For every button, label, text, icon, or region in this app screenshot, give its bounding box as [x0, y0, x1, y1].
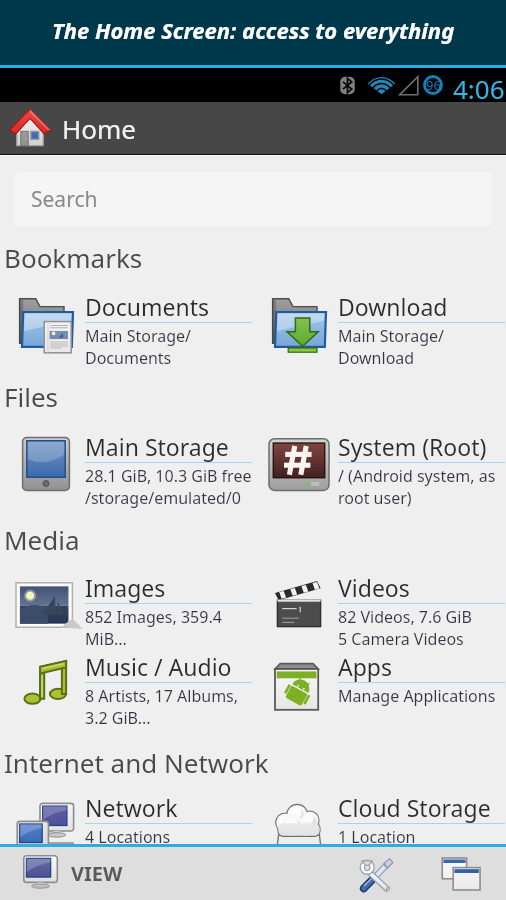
button[interactable]: Home: [0, 102, 506, 154]
staticText: Documents: [85, 347, 172, 369]
staticText: MiB...: [85, 628, 127, 650]
button[interactable]: Images: [0, 572, 253, 650]
staticText: Download: [338, 347, 415, 369]
staticText: VIEW: [71, 860, 123, 887]
button[interactable]: Music / Audio: [0, 651, 253, 729]
staticText: 8 Artists, 17 Albums,: [85, 685, 239, 707]
staticText: Search: [31, 185, 98, 214]
button[interactable]: Download: [253, 291, 506, 369]
button[interactable]: Documents: [0, 291, 253, 369]
staticText: Internet and Network: [4, 745, 269, 780]
staticText: root user): [338, 487, 412, 509]
staticText: 4 Locations: [85, 826, 171, 848]
button[interactable]: Network: [0, 792, 253, 852]
staticText: / (Android system, as: [338, 465, 496, 487]
staticText: 4:06: [453, 71, 505, 105]
button[interactable]: Tools: [354, 847, 398, 900]
staticText: 5 Camera Videos: [338, 628, 464, 650]
staticText: Music / Audio: [85, 651, 232, 682]
button[interactable]: Videos: [253, 572, 506, 650]
staticText: The Home Screen: access to everything: [52, 15, 455, 45]
staticText: Download: [338, 291, 448, 322]
staticText: 28.1 GiB, 10.3 GiB free: [85, 465, 252, 487]
staticText: 3.2 GiB...: [85, 707, 151, 729]
button[interactable]: Main Storage: [0, 431, 253, 509]
staticText: /storage/emulated/0: [85, 487, 241, 509]
staticText: Home: [62, 111, 136, 146]
staticText: Apps: [338, 651, 393, 682]
staticText: Files: [4, 379, 59, 414]
staticText: 1 Location: [338, 826, 416, 848]
staticText: Media: [4, 522, 80, 557]
button[interactable]: VIEW: [23, 847, 143, 900]
staticText: Documents: [85, 291, 209, 322]
staticText: System (Root): [338, 431, 487, 462]
button[interactable]: Windows: [438, 847, 486, 900]
staticText: Main Storage: [85, 431, 229, 462]
staticText: Bookmarks: [4, 240, 143, 275]
staticText: Main Storage/: [338, 325, 444, 347]
staticText: 96: [426, 76, 441, 94]
staticText: Videos: [338, 572, 410, 603]
staticText: 852 Images, 359.4: [85, 606, 222, 628]
staticText: Network: [85, 792, 178, 823]
staticText: Manage Applications: [338, 685, 496, 707]
button[interactable]: Search: [14, 172, 492, 226]
button[interactable]: Cloud Storage: [253, 792, 506, 852]
staticText: Main Storage/: [85, 325, 191, 347]
staticText: Images: [85, 572, 166, 603]
button[interactable]: System (Root): [253, 431, 506, 509]
staticText: 82 Videos, 7.6 GiB: [338, 606, 472, 628]
staticText: Cloud Storage: [338, 792, 491, 823]
button[interactable]: Apps: [253, 651, 506, 711]
